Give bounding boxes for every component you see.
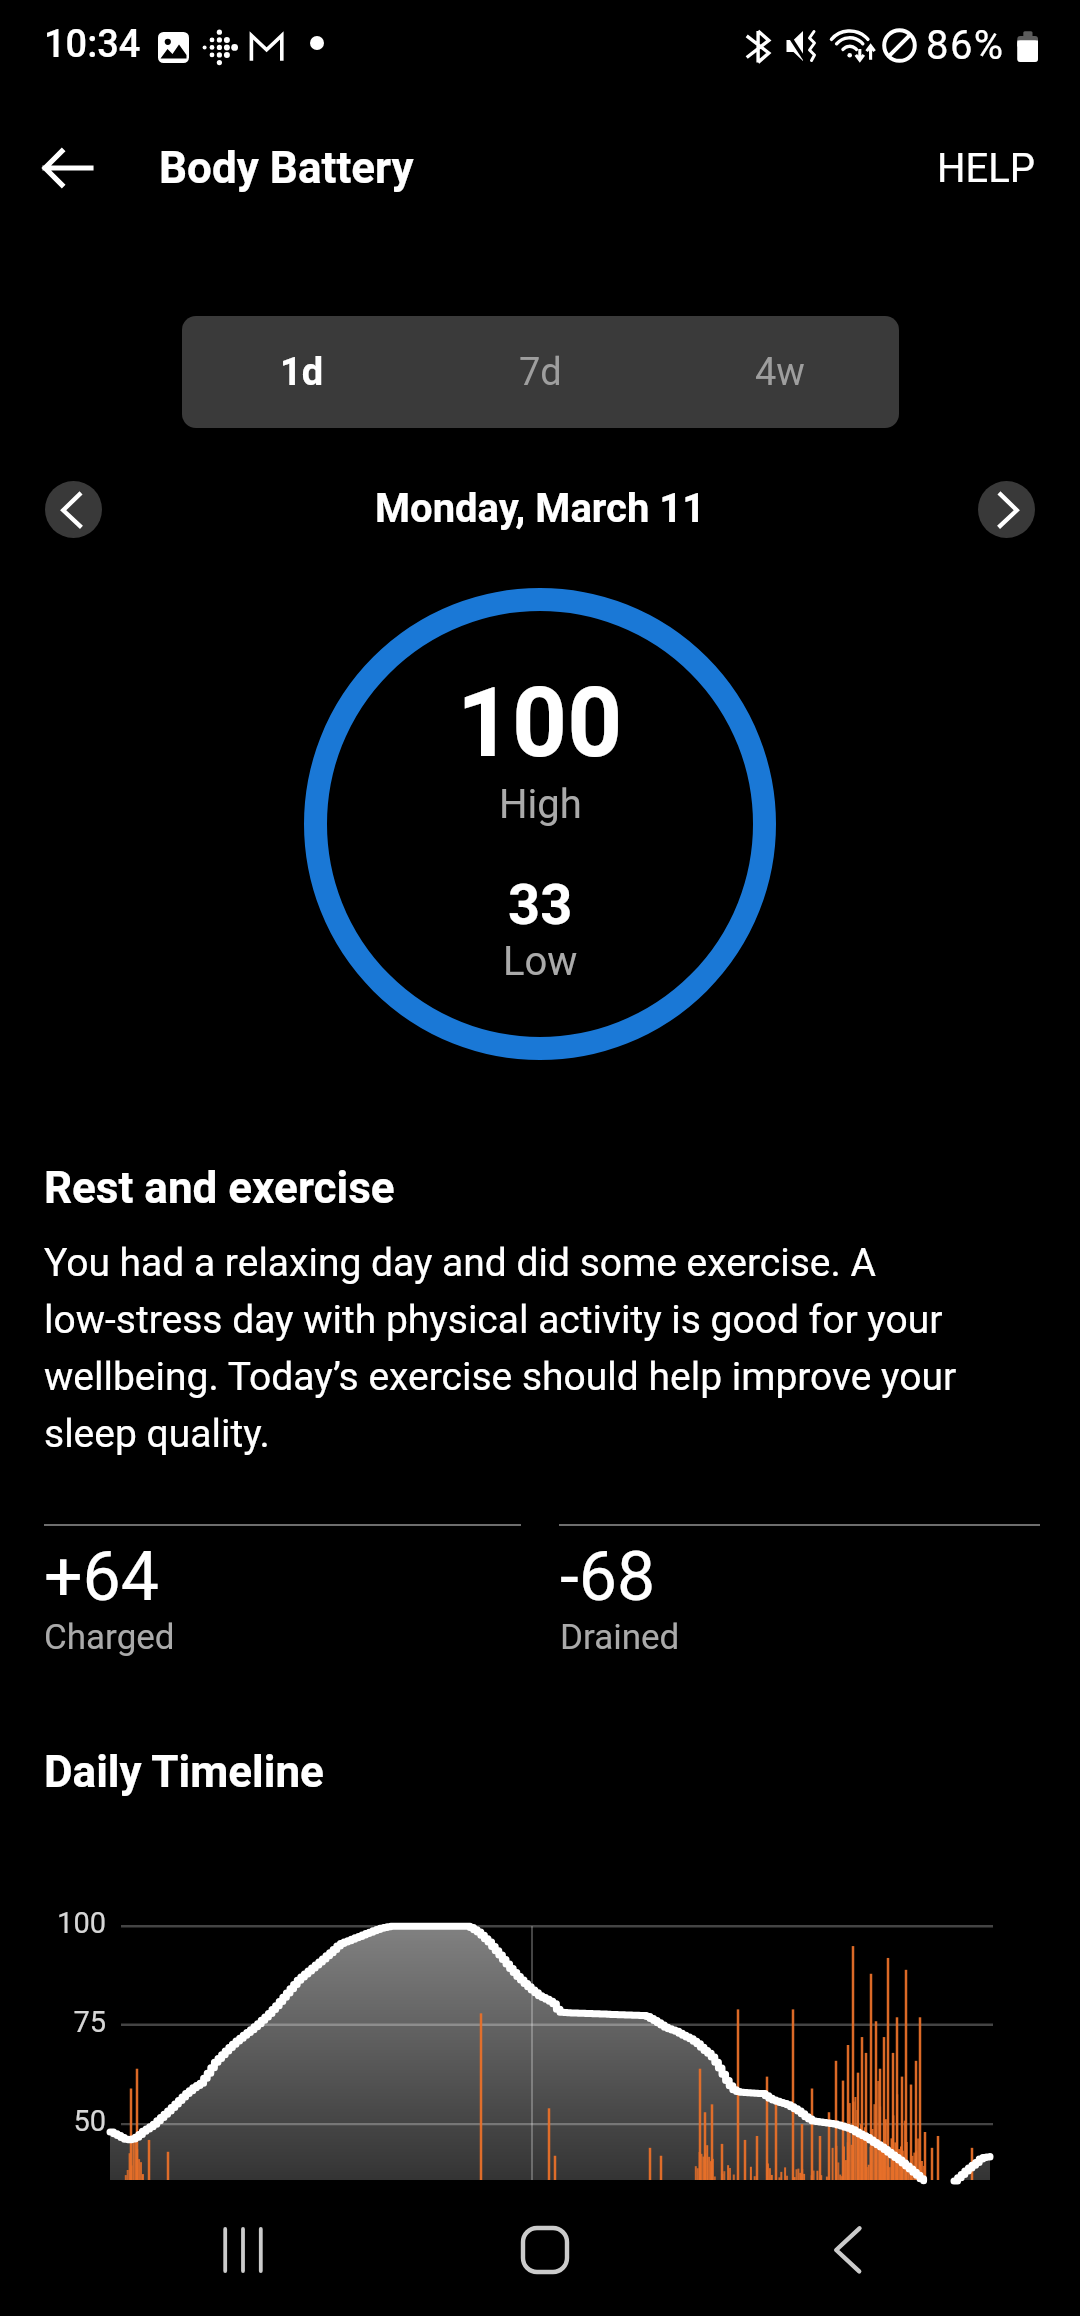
staticText: Monday, March 11: [375, 485, 706, 532]
button[interactable]: Back: [790, 2188, 910, 2314]
staticText: 4w: [755, 350, 805, 395]
staticText: Body Battery: [159, 142, 414, 194]
staticText: 75: [0, 2005, 106, 2039]
staticText: Drained: [560, 1617, 680, 1658]
staticText: Daily Timeline: [44, 1746, 324, 1798]
staticText: Rest and exercise: [44, 1162, 395, 1214]
staticText: 100: [0, 1906, 106, 1940]
staticText: 7d: [519, 350, 562, 395]
staticText: 100: [457, 667, 623, 780]
button[interactable]: Next day: [978, 481, 1035, 538]
button[interactable]: 4w: [660, 316, 899, 428]
staticText: 50: [0, 2104, 106, 2138]
staticText: High: [499, 781, 582, 828]
staticText: 10:34: [44, 22, 141, 67]
button[interactable]: Home: [485, 2188, 605, 2314]
staticText: 86%: [926, 22, 1005, 69]
button[interactable]: Previous day: [45, 481, 102, 538]
staticText: +64: [44, 1537, 160, 1617]
staticText: Charged: [44, 1617, 175, 1658]
staticText: 1d: [280, 350, 324, 395]
staticText: -68: [560, 1537, 656, 1617]
button[interactable]: Recent apps: [183, 2188, 303, 2314]
button[interactable]: 1d: [182, 316, 421, 428]
staticText: You had a relaxing day and did some exer…: [44, 1240, 957, 1457]
staticText: 33: [508, 872, 573, 938]
staticText: Low: [503, 938, 578, 985]
button[interactable]: Back: [20, 120, 116, 216]
button[interactable]: HELP: [893, 120, 1080, 216]
staticText: HELP: [937, 145, 1036, 192]
button[interactable]: 7d: [421, 316, 660, 428]
